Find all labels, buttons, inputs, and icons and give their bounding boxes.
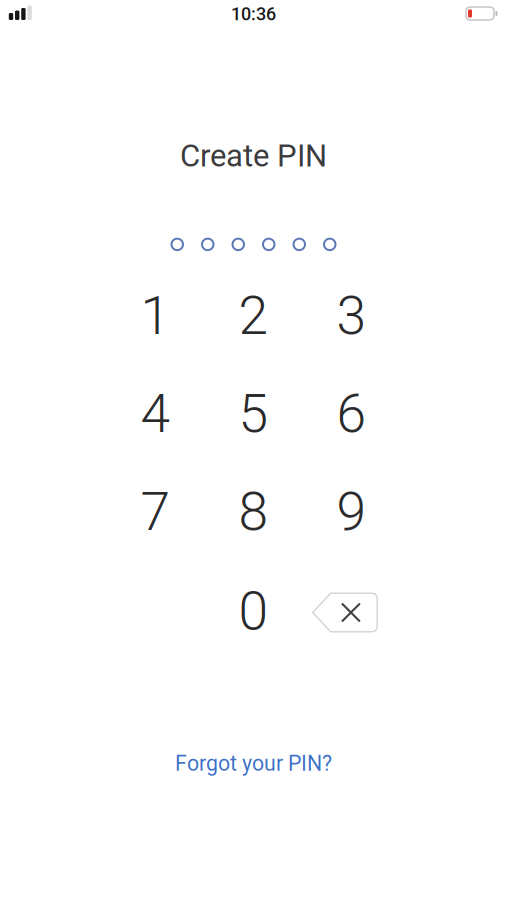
staticText: 2 xyxy=(238,284,268,347)
staticText: 7 xyxy=(140,480,170,543)
button[interactable]: 1 xyxy=(115,276,195,356)
staticText: Forgot your PIN? xyxy=(175,751,332,776)
button[interactable]: 9 xyxy=(311,472,391,552)
button[interactable]: 8 xyxy=(213,472,293,552)
staticText: 3 xyxy=(336,284,366,347)
staticText: 1 xyxy=(140,284,170,347)
button[interactable]: 4 xyxy=(115,374,195,454)
staticText: 6 xyxy=(336,382,366,445)
button[interactable]: 7 xyxy=(115,472,195,552)
staticText: 10:36 xyxy=(231,3,276,25)
staticText: 0 xyxy=(238,580,268,642)
button[interactable]: 3 xyxy=(311,276,391,356)
button[interactable]: 5 xyxy=(213,374,293,454)
staticText: 5 xyxy=(238,382,268,445)
staticText: Create PIN xyxy=(180,138,327,174)
button[interactable]: 0 xyxy=(213,571,293,651)
staticText: 8 xyxy=(238,480,268,543)
staticText: 4 xyxy=(140,382,170,445)
staticText: 9 xyxy=(336,480,366,543)
button[interactable]: 6 xyxy=(311,374,391,454)
button[interactable]: Delete xyxy=(312,592,378,632)
button[interactable]: Forgot your PIN? xyxy=(175,751,332,776)
button[interactable]: 2 xyxy=(213,276,293,356)
